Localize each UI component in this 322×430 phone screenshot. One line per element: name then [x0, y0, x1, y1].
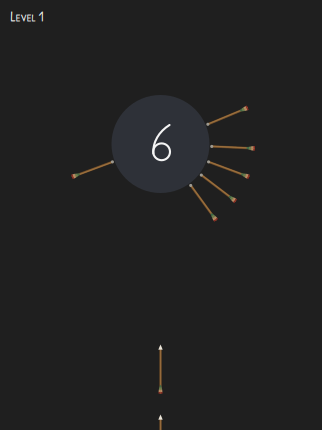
staticText: Level 1	[10, 7, 43, 26]
